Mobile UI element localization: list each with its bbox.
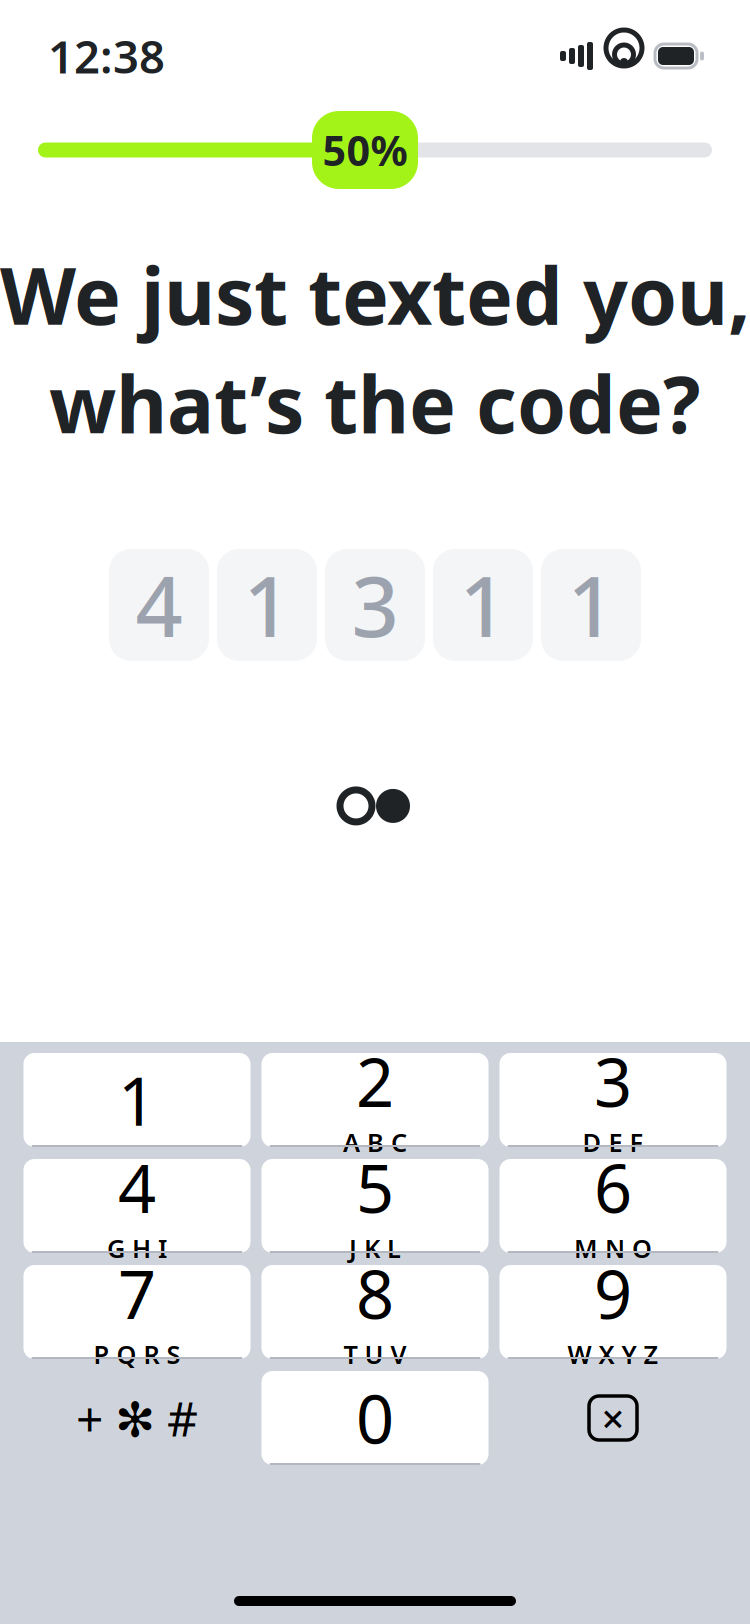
staticText: 7 <box>118 1249 156 1337</box>
staticText: 3 <box>594 1037 632 1125</box>
staticText: 5 <box>356 1143 394 1231</box>
staticText: D E F <box>582 1125 643 1159</box>
staticText: 3 <box>351 550 398 660</box>
button[interactable]: 6 <box>499 1159 726 1253</box>
button[interactable]: 9 <box>499 1265 726 1359</box>
button[interactable]: 1 <box>541 549 641 661</box>
staticText: 1 <box>567 550 614 660</box>
button[interactable]: 4 <box>23 1159 250 1253</box>
button[interactable]: 2 <box>261 1053 488 1147</box>
staticText: 4 <box>135 550 182 660</box>
button[interactable]: 5 <box>261 1159 488 1253</box>
button[interactable]: 1 <box>217 549 317 661</box>
staticText: T U V <box>343 1337 406 1371</box>
button[interactable]: 3 <box>325 549 425 661</box>
staticText: + ✻ # <box>76 1386 198 1450</box>
staticText: M N O <box>574 1231 652 1265</box>
button[interactable]: 4 <box>109 549 209 661</box>
staticText: 0 <box>356 1374 394 1462</box>
staticText: J K L <box>349 1231 401 1265</box>
staticText: P Q R S <box>93 1337 180 1371</box>
button[interactable]: 7 <box>23 1265 250 1359</box>
staticText: 1 <box>459 550 506 660</box>
button[interactable]: 1 <box>23 1053 250 1147</box>
staticText: We just texted you, <box>0 242 750 346</box>
staticText: 1 <box>118 1056 156 1144</box>
staticText: 12:38 <box>48 26 165 86</box>
staticText: what’s the code? <box>49 350 701 455</box>
staticText: G H I <box>107 1231 167 1265</box>
button[interactable]: 1 <box>433 549 533 661</box>
button[interactable]: Delete <box>499 1371 726 1465</box>
staticText: A B C <box>343 1125 407 1159</box>
staticText: 4 <box>118 1143 156 1231</box>
button[interactable]: 3 <box>499 1053 726 1147</box>
staticText: 2 <box>356 1037 394 1125</box>
staticText: 9 <box>594 1249 632 1337</box>
button[interactable]: Symbols <box>23 1371 250 1465</box>
button[interactable]: 8 <box>261 1265 488 1359</box>
staticText: 6 <box>594 1143 632 1231</box>
staticText: 1 <box>243 550 290 660</box>
staticText: × <box>601 1391 624 1444</box>
staticText: W X Y Z <box>567 1337 658 1371</box>
button[interactable]: 0 <box>261 1371 488 1465</box>
staticText: 8 <box>356 1249 394 1337</box>
staticText: 50% <box>322 123 407 177</box>
